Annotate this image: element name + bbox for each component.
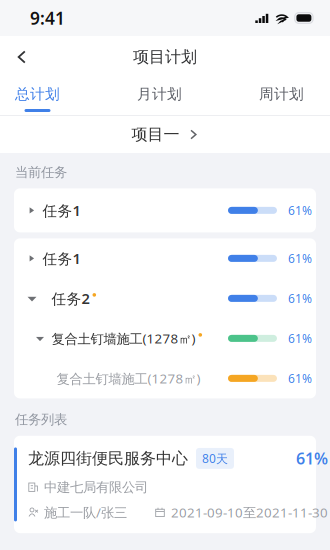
staticText: 61% [288,290,312,306]
staticText: 月计划 [137,85,182,103]
button[interactable]: 总计划 [15,78,60,116]
staticText: 61% [288,250,312,266]
staticText: 任务1 [42,201,80,220]
staticText: 61% [296,448,328,469]
button[interactable]: 月计划 [137,78,182,116]
staticText: 任务2 [51,289,89,308]
button[interactable]: 返回 [0,37,44,77]
staticText: 2021-09-10至2021-11-30 [171,503,328,521]
staticText: 61% [288,202,312,218]
staticText: 任务1 [42,249,80,268]
button[interactable]: 龙源四街便民服务中心 [14,436,316,533]
staticText: 龙源四街便民服务中心 [28,449,188,468]
button[interactable]: 61% [14,318,316,358]
button[interactable]: 61% [14,278,316,318]
staticText: 项目计划 [133,47,197,67]
staticText: 周计划 [259,85,304,103]
staticText: 项目一 [131,125,179,144]
staticText: 80天 [202,450,228,466]
button[interactable]: 项目一 [0,116,330,153]
staticText: 当前任务 [15,164,67,180]
button[interactable]: 61% [14,238,316,278]
staticText: 61% [288,330,312,346]
button[interactable]: 61% [14,358,316,398]
staticText: 9:41 [30,6,65,29]
staticText: 复合土钉墙施工(1278㎡) [51,329,195,347]
staticText: 施工一队/张三 [44,503,127,521]
button[interactable]: 周计划 [259,78,304,116]
staticText: 61% [288,370,312,386]
staticText: 任务列表 [15,411,67,428]
staticText: 中建七局有限公司 [44,479,148,495]
staticText: 复合土钉墙施工(1278㎡) [56,369,200,387]
button[interactable]: 61% [14,188,316,232]
staticText: 总计划 [15,85,60,103]
